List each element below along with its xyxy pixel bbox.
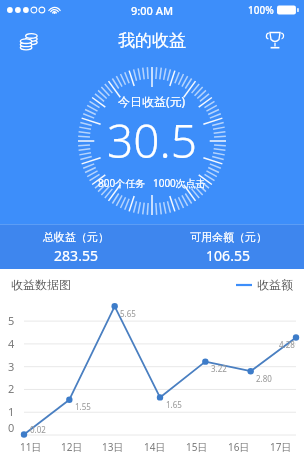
staticText: 0 — [8, 420, 15, 435]
staticText: 11日 — [20, 440, 42, 454]
staticText: 283.55 — [54, 246, 98, 265]
staticText: 30.5 — [107, 109, 198, 172]
staticText: 3.22 — [211, 363, 227, 374]
staticText: 4 — [8, 336, 15, 351]
staticText: 4.28 — [279, 339, 295, 350]
staticText: 15日 — [186, 440, 208, 454]
staticText: 12日 — [61, 440, 83, 454]
staticText: 5.65 — [120, 308, 136, 319]
staticText: 106.55 — [206, 246, 250, 265]
staticText: 3 — [8, 359, 15, 374]
staticText: 13日 — [102, 440, 124, 454]
staticText: 17日 — [270, 440, 292, 454]
staticText: 1.55 — [75, 401, 91, 412]
staticText: 收益数据图 — [11, 277, 71, 292]
staticText: 0.02 — [30, 424, 46, 435]
staticText: 我的收益 — [118, 30, 186, 51]
button[interactable]: 总收益（元） — [0, 225, 152, 269]
staticText: 100% — [248, 3, 274, 17]
button[interactable]: 可用余额（元） — [152, 225, 304, 269]
staticText: 14日 — [144, 440, 166, 454]
button[interactable]: Ranking — [256, 21, 294, 59]
staticText: 收益额 — [257, 277, 293, 292]
staticText: 5 — [8, 313, 15, 328]
staticText: 总收益（元） — [43, 230, 109, 244]
staticText: 2 — [8, 381, 15, 396]
staticText: 800个任务 1000次点击 — [98, 176, 206, 190]
staticText: 1.65 — [166, 399, 182, 410]
staticText: 2.80 — [256, 373, 272, 384]
staticText: 16日 — [228, 440, 250, 454]
staticText: 9:00 AM — [131, 3, 174, 18]
button[interactable]: My coins — [10, 21, 48, 59]
staticText: 1 — [8, 404, 15, 419]
staticText: 今日收益(元) — [118, 93, 186, 109]
staticText: 可用余额（元） — [190, 230, 267, 244]
